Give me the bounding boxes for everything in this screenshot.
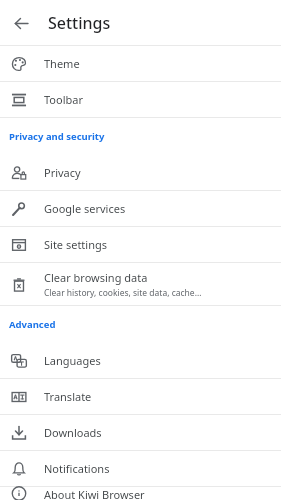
- staticText: Toolbar: [44, 92, 83, 107]
- staticText: Privacy: [44, 165, 81, 180]
- staticText: Languages: [44, 353, 101, 368]
- button[interactable]: Notifications: [0, 451, 281, 486]
- button[interactable]: Toolbar: [0, 82, 281, 117]
- button[interactable]: Back: [5, 7, 37, 39]
- staticText: Privacy and security: [9, 130, 105, 143]
- button[interactable]: Privacy: [0, 155, 281, 190]
- staticText: About Kiwi Browser: [44, 487, 145, 500]
- button[interactable]: Languages: [0, 343, 281, 378]
- staticText: Site settings: [44, 237, 107, 252]
- staticText: Downloads: [44, 425, 102, 440]
- staticText: Clear history, cookies, site data, cache…: [44, 287, 202, 299]
- button[interactable]: About Kiwi Browser: [0, 487, 281, 500]
- staticText: Clear browsing data: [44, 270, 148, 285]
- button[interactable]: Theme: [0, 46, 281, 81]
- staticText: Settings: [48, 12, 111, 34]
- staticText: Theme: [44, 56, 80, 71]
- button[interactable]: Downloads: [0, 415, 281, 450]
- button[interactable]: Site settings: [0, 227, 281, 262]
- button[interactable]: Google services: [0, 191, 281, 226]
- button[interactable]: Clear browsing data: [0, 263, 281, 305]
- button[interactable]: Translate: [0, 379, 281, 414]
- staticText: Advanced: [9, 318, 56, 331]
- staticText: Notifications: [44, 461, 110, 476]
- staticText: Translate: [44, 389, 92, 404]
- staticText: Google services: [44, 201, 126, 216]
